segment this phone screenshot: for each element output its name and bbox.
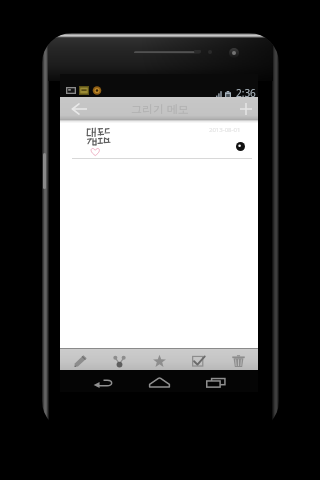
- button[interactable]: Pen colour: [234, 140, 246, 152]
- button[interactable]: Checklist: [179, 350, 218, 371]
- button[interactable]: Delete: [219, 350, 258, 371]
- button[interactable]: Home: [131, 370, 187, 392]
- button[interactable]: Back: [75, 370, 131, 392]
- button[interactable]: 2013-08-01: [60, 120, 258, 158]
- button[interactable]: Share: [100, 350, 139, 371]
- button[interactable]: Recent apps: [187, 370, 243, 392]
- button[interactable]: Favourite: [140, 350, 179, 371]
- staticText: 2013-08-01: [209, 126, 241, 134]
- staticText: 2:36: [236, 86, 256, 100]
- button[interactable]: Back: [66, 97, 92, 120]
- button[interactable]: Draw: [61, 350, 100, 371]
- staticText: 그리기 메모: [131, 101, 189, 116]
- button[interactable]: Add: [233, 97, 258, 120]
